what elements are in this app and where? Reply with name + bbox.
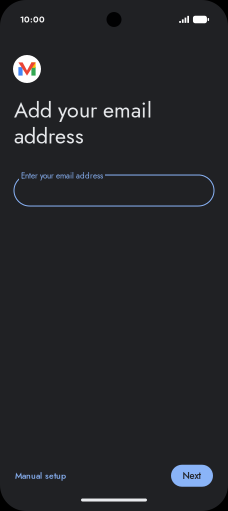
staticText: Manual setup: [15, 469, 66, 482]
staticText: address: [14, 121, 84, 151]
staticText: 10:00: [20, 13, 45, 26]
staticText: Next: [182, 469, 201, 482]
staticText: Add your email: [14, 95, 152, 125]
staticText: Enter your email address: [21, 170, 103, 182]
button[interactable]: Manual setup: [9, 462, 72, 489]
button[interactable]: Next: [171, 465, 213, 487]
